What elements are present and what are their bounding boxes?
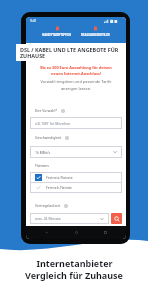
- button[interactable]: max. 24 Monate: [30, 213, 109, 224]
- button[interactable]: Suchen: [111, 213, 122, 224]
- staticText: Fernseh-Flatrate: [46, 185, 73, 190]
- button[interactable]: Recents: [103, 230, 108, 235]
- staticText: Internetanbieter: [36, 257, 113, 269]
- staticText: 16 MBit/s: [35, 150, 51, 155]
- staticText: Ihre Vorwahl*: [35, 108, 58, 113]
- button[interactable]: DEALSANGEBOTE.DE: [76, 26, 114, 37]
- button[interactable]: Fernseh-Flatrate: [30, 182, 122, 193]
- staticText: Vergleich für Zuhause: [25, 269, 123, 281]
- button[interactable]: HANDYTARIFTIPP.DE: [38, 26, 76, 37]
- staticText: HANDYTARIFTIPP.DE: [42, 33, 72, 37]
- button[interactable]: Festnetz-Flatrate: [30, 172, 122, 183]
- staticText: Vertragslaufzeit: [35, 203, 61, 208]
- staticText: Flatrates: [35, 163, 49, 168]
- staticText: DSL / KABEL UND LTE ANGEBOTE FÜR ZUHAUSE: [20, 46, 119, 60]
- staticText: Geschwindigkeit: [35, 135, 62, 140]
- staticText: max. 24 Monate: [35, 216, 61, 221]
- staticText: z.B. '089' für München: [35, 121, 71, 126]
- button[interactable]: Back: [44, 230, 49, 235]
- staticText: 9:41: [30, 18, 37, 23]
- staticText: DEALSANGEBOTE.DE: [81, 33, 110, 37]
- staticText: Festnetz-Flatrate: [46, 175, 73, 180]
- staticText: Bis zu 300 Euro Auszahlung für deinen ne…: [37, 65, 115, 76]
- button[interactable]: z.B. '089' für München: [30, 117, 122, 129]
- button[interactable]: 16 MBit/s: [30, 146, 122, 158]
- button[interactable]: Home: [74, 230, 79, 235]
- staticText: Vorwahl eingeben und passende Tarife anz…: [40, 79, 112, 91]
